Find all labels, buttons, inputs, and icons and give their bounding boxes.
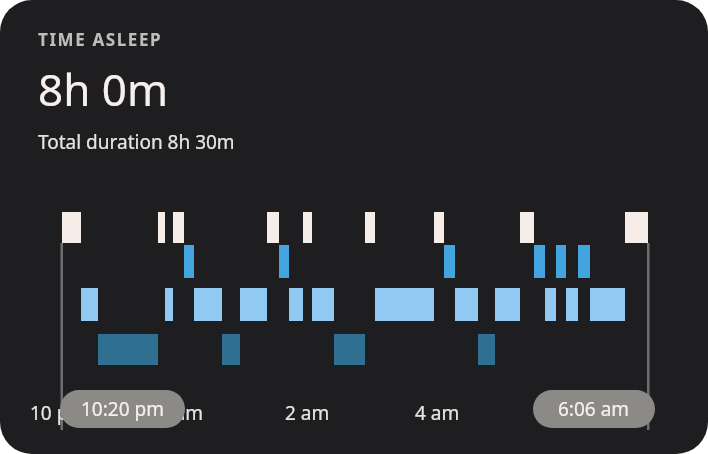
- staticText: 6:06 am: [558, 396, 630, 422]
- other: Sleep stages chart: [0, 0, 708, 454]
- button[interactable]: 10:20 pm: [60, 390, 185, 428]
- staticText: 10 pm: [30, 400, 87, 426]
- staticText: 2 am: [285, 400, 330, 426]
- staticText: Total duration 8h 30m: [38, 129, 235, 155]
- staticText: TIME ASLEEP: [38, 28, 163, 51]
- staticText: 4 am: [415, 400, 460, 426]
- staticText: 10:20 pm: [81, 396, 164, 422]
- staticText: 12 am: [148, 400, 204, 426]
- staticText: 8h 0m: [38, 59, 169, 119]
- button[interactable]: 6:06 am: [533, 390, 655, 428]
